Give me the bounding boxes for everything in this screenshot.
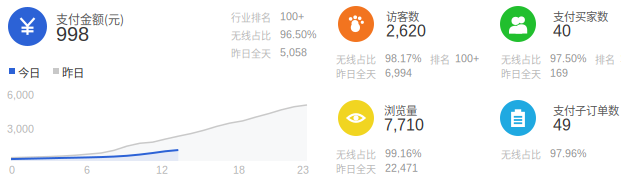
staticText: 排名 (430, 52, 450, 66)
staticText: 1 (620, 52, 621, 64)
staticText: 97.50% (550, 52, 586, 64)
staticText: 169 (550, 67, 568, 79)
staticText: 98.17% (385, 52, 421, 64)
staticText: 100+ (280, 10, 304, 22)
button[interactable]: 支付金额(元) (8, 7, 188, 53)
staticText: 40 (553, 22, 571, 40)
staticText: 访客数 (386, 8, 419, 24)
staticText: 2,620 (386, 22, 426, 40)
staticText: 浏览量 (384, 102, 417, 118)
staticText: 支付子订单数 (553, 102, 619, 118)
staticText: 18 (233, 164, 245, 176)
staticText: 99.16% (385, 147, 421, 159)
staticText: 6 (84, 164, 90, 176)
staticText: 无线占比 (336, 147, 376, 161)
staticText: 支付买家数 (553, 8, 608, 24)
button[interactable]: 访客数 (338, 6, 488, 48)
staticText: 22,471 (385, 162, 418, 174)
staticText: 昨日全天 (231, 46, 271, 60)
staticText: 6,994 (385, 67, 412, 79)
staticText: 100+ (455, 52, 479, 64)
staticText: 49 (553, 116, 571, 134)
button[interactable]: 支付子订单数 (500, 100, 621, 142)
staticText: 行业排名 (231, 10, 271, 24)
staticText: 7,710 (384, 116, 424, 134)
button[interactable]: 浏览量 (338, 100, 488, 142)
staticText: 23 (297, 164, 309, 176)
staticText: 无线占比 (231, 28, 271, 42)
staticText: 支付金额(元) (56, 10, 124, 28)
staticText: 今日 (18, 64, 40, 80)
staticText: 昨日全天 (336, 161, 376, 176)
staticText: 96.50% (280, 28, 316, 40)
staticText: 无线占比 (501, 147, 541, 161)
staticText: 0 (9, 164, 15, 176)
staticText: 6,000 (7, 89, 34, 101)
staticText: 3,000 (7, 123, 34, 135)
staticText: 昨日全天 (501, 66, 541, 81)
staticText: 97.96% (550, 147, 586, 159)
staticText: 998 (56, 23, 89, 45)
staticText: 排名 (595, 52, 615, 66)
staticText: 无线占比 (501, 52, 541, 66)
staticText: 12 (156, 164, 168, 176)
staticText: 无线占比 (336, 52, 376, 66)
button[interactable]: 支付买家数 (500, 6, 621, 48)
staticText: 昨日全天 (336, 66, 376, 81)
staticText: 昨日 (62, 64, 84, 80)
staticText: 5,058 (280, 46, 307, 58)
